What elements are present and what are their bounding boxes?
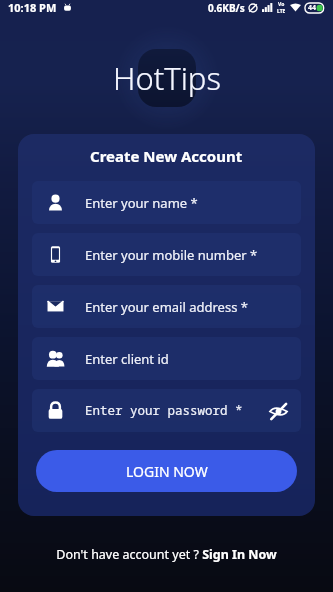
staticText: Enter your name * bbox=[85, 194, 198, 212]
staticText: Enter your mobile number * bbox=[85, 246, 258, 264]
staticText: LOGIN NOW bbox=[126, 462, 208, 481]
staticText: 44 bbox=[308, 3, 317, 13]
button[interactable]: Enter your email address * bbox=[32, 285, 301, 328]
button[interactable]: LOGIN NOW bbox=[36, 450, 297, 492]
staticText: 10:18 PM bbox=[8, 0, 57, 15]
staticText: Vo bbox=[278, 1, 285, 8]
button[interactable]: Enter your name * bbox=[32, 181, 301, 224]
button[interactable]: Enter your mobile number * bbox=[32, 233, 301, 276]
button[interactable]: Enter client id bbox=[32, 337, 301, 380]
button[interactable]: Don't have account yet ? Sign In Now bbox=[56, 546, 277, 563]
button[interactable]: Show password bbox=[267, 400, 289, 422]
staticText: LTE bbox=[277, 8, 286, 15]
button[interactable]: Enter your password * bbox=[32, 389, 301, 432]
staticText: Don't have account yet ? Sign In Now bbox=[56, 546, 277, 563]
staticText: Enter client id bbox=[85, 350, 169, 368]
staticText: Enter your password * bbox=[85, 402, 243, 419]
staticText: HotTips bbox=[113, 57, 221, 99]
staticText: 0.6KB/s bbox=[208, 1, 245, 15]
staticText: Enter your email address * bbox=[85, 298, 248, 316]
staticText: Create New Account bbox=[90, 146, 243, 166]
